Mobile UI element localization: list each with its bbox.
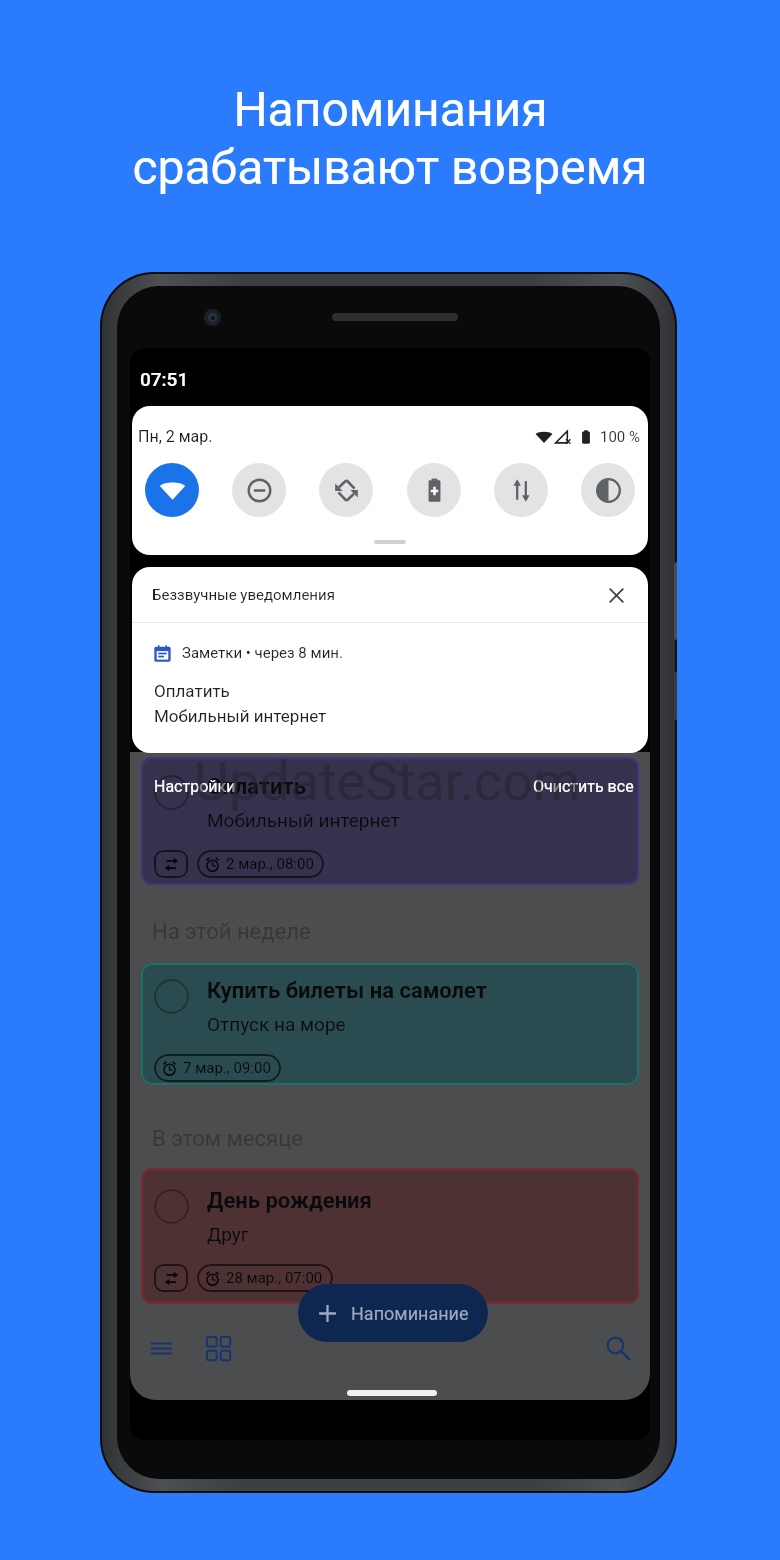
button[interactable]: Беззвучные уведомления <box>132 567 648 622</box>
staticText: 2 мар., 08:00 <box>226 855 314 873</box>
staticText: 100 % <box>600 428 640 446</box>
button[interactable]: Отметить выполненным <box>154 979 189 1014</box>
button[interactable]: Отметить выполненным <box>141 1168 639 1304</box>
staticText: Мобильный интернет <box>154 706 327 726</box>
button[interactable]: Сетка <box>196 1326 240 1370</box>
button[interactable]: Отметить выполненным <box>141 757 639 885</box>
staticText: На этой неделе <box>152 919 311 945</box>
button[interactable]: 28 мар., 07:00 <box>197 1264 333 1292</box>
staticText: День рождения <box>207 1188 372 1214</box>
staticText: Оплатить <box>154 681 230 701</box>
button[interactable]: Закрыть <box>602 581 630 609</box>
button[interactable]: Wi-Fi <box>145 463 199 517</box>
button[interactable]: Повтор <box>154 850 188 878</box>
staticText: Оплатить <box>207 774 306 800</box>
staticText: срабатывают вовремя <box>132 139 648 195</box>
staticText: В этом месяце <box>152 1126 303 1152</box>
staticText: Купить билеты на самолет <box>207 978 488 1004</box>
button[interactable]: Заметки • через 8 мин. <box>132 623 648 726</box>
button[interactable]: Поиск <box>596 1326 640 1370</box>
button[interactable]: Автоповорот <box>319 463 373 517</box>
button[interactable]: 7 мар., 09:00 <box>154 1054 281 1082</box>
button[interactable]: Тёмная тема <box>581 463 635 517</box>
staticText: UpdateStar.com <box>194 750 581 813</box>
staticText: Беззвучные уведомления <box>152 586 335 604</box>
staticText: 07:51 <box>140 368 189 390</box>
button[interactable]: Очистить все <box>533 777 634 796</box>
button[interactable]: Передача данных <box>494 463 548 517</box>
button[interactable]: Настройки <box>154 777 236 796</box>
staticText: 7 мар., 09:00 <box>183 1059 271 1077</box>
staticText: Мобильный интернет <box>207 809 400 831</box>
staticText: Напоминания <box>233 81 548 137</box>
button[interactable]: Напоминание <box>298 1284 488 1342</box>
staticText: Пн, 2 мар. <box>138 427 213 446</box>
staticText: 28 мар., 07:00 <box>226 1269 323 1287</box>
button[interactable]: 2 мар., 08:00 <box>197 850 324 878</box>
staticText: Друг <box>207 1223 249 1245</box>
button[interactable]: Меню <box>139 1326 183 1370</box>
button[interactable]: Экономия батареи <box>407 463 461 517</box>
button[interactable]: Повтор <box>154 1264 188 1292</box>
button[interactable]: Отметить выполненным <box>154 1189 189 1224</box>
staticText: Напоминание <box>351 1303 469 1324</box>
button[interactable]: Отметить выполненным <box>154 775 189 810</box>
button[interactable]: Отметить выполненным <box>141 963 639 1085</box>
staticText: Отпуск на море <box>207 1013 346 1035</box>
staticText: Заметки • через 8 мин. <box>182 644 343 662</box>
button[interactable]: Не беспокоить <box>232 463 286 517</box>
